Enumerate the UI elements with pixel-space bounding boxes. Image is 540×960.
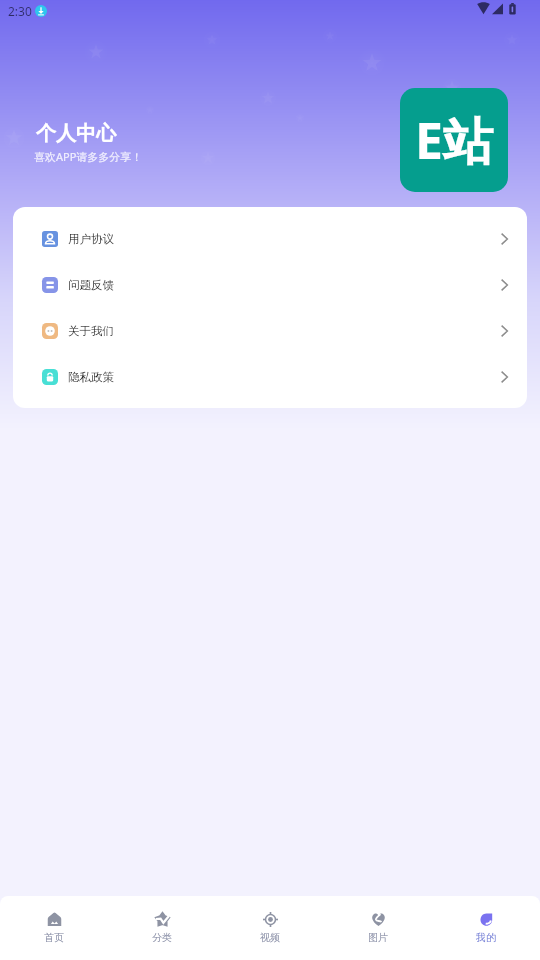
button[interactable]: 用户协议 bbox=[13, 216, 527, 262]
button[interactable]: E站 bbox=[400, 88, 508, 192]
staticText: 用户协议 bbox=[68, 232, 114, 246]
staticText: 我的 bbox=[476, 931, 496, 944]
staticText: E站 bbox=[415, 106, 493, 174]
button[interactable]: 图片 bbox=[324, 896, 432, 960]
staticText: 图片 bbox=[368, 931, 388, 944]
staticText: 喜欢APP请多多分享！ bbox=[34, 149, 143, 164]
button[interactable]: 关于我们 bbox=[13, 308, 527, 354]
button[interactable]: 我的 bbox=[432, 896, 540, 960]
staticText: 问题反馈 bbox=[68, 278, 114, 292]
button[interactable]: 首页 bbox=[0, 896, 108, 960]
staticText: 视频 bbox=[260, 931, 280, 944]
staticText: 2:30 bbox=[8, 3, 32, 19]
button[interactable]: 问题反馈 bbox=[13, 262, 527, 308]
button[interactable]: 视频 bbox=[216, 896, 324, 960]
staticText: 个人中心 bbox=[36, 121, 116, 146]
staticText: 隐私政策 bbox=[68, 370, 114, 384]
staticText: 首页 bbox=[44, 931, 64, 944]
button[interactable]: 隐私政策 bbox=[13, 354, 527, 400]
staticText: 分类 bbox=[152, 931, 172, 944]
button[interactable]: 分类 bbox=[108, 896, 216, 960]
staticText: 关于我们 bbox=[68, 324, 114, 338]
